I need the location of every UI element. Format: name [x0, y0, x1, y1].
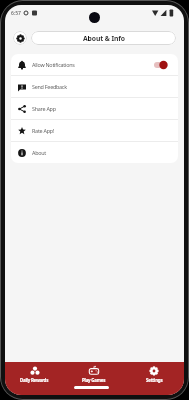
- button[interactable]: Daily Rewards: [5, 364, 64, 395]
- staticText: About: [32, 149, 47, 156]
- button[interactable]: About: [11, 142, 178, 163]
- button[interactable]: Send Feedback: [11, 76, 178, 97]
- button[interactable]: Allow Notifications: [11, 54, 178, 75]
- button[interactable]: Play Games: [64, 364, 124, 395]
- button[interactable]: Rate App!: [11, 120, 178, 141]
- staticText: Send Feedback: [32, 83, 67, 90]
- staticText: Daily Rewards: [20, 377, 49, 383]
- button[interactable]: [13, 31, 27, 45]
- staticText: Settings: [146, 377, 163, 383]
- staticText: About & Info: [83, 34, 125, 43]
- button[interactable]: About & Info: [31, 31, 176, 45]
- staticText: Share App: [32, 105, 56, 112]
- staticText: Play Games: [82, 377, 106, 383]
- staticText: 6:57: [11, 10, 21, 17]
- staticText: Allow Notifications: [32, 61, 75, 68]
- button[interactable]: Settings: [124, 364, 184, 395]
- button[interactable]: Share App: [11, 98, 178, 119]
- staticText: Rate App!: [32, 127, 55, 134]
